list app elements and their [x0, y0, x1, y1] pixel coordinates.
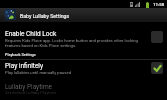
staticText: Lullaby Playtime — [5, 83, 53, 91]
button[interactable]: Baby Lullaby Settings — [0, 8, 167, 22]
staticText: 11:58 — [153, 2, 165, 7]
button[interactable]: Checked — [151, 62, 163, 74]
button[interactable]: Enable Child Lock — [0, 23, 167, 50]
staticText: features based on Kids Place settings. — [5, 43, 77, 48]
staticText: Requires Kids Place app. Locks home butt… — [5, 38, 138, 43]
staticText: Play infinitely — [5, 62, 44, 70]
staticText: Set default Lullaby Playtime — [5, 90, 57, 95]
button[interactable]: Play infinitely — [0, 60, 167, 80]
button[interactable]: Lullaby Playtime — [0, 80, 167, 100]
staticText: Enable Child Lock — [5, 30, 57, 38]
staticText: Play lullabies until manually paused — [5, 70, 72, 75]
staticText: Baby Lullaby Settings — [20, 13, 70, 19]
staticText: Playback Settings — [5, 52, 36, 56]
button[interactable]: Unchecked — [151, 31, 163, 43]
